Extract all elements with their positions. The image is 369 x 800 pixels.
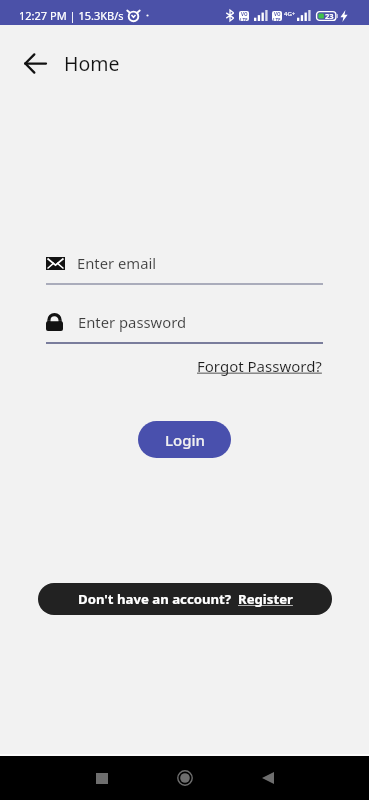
button[interactable]: Back — [246, 756, 290, 800]
button[interactable]: Don't have an account? — [38, 583, 332, 615]
staticText: Enter email — [77, 253, 157, 273]
staticText: VO — [274, 11, 281, 17]
staticText: VO — [241, 11, 248, 17]
button[interactable]: Back — [18, 46, 52, 80]
staticText: Register — [238, 590, 293, 608]
staticText: Enter password — [78, 312, 187, 332]
staticText: 12:27 PM | 15.3KB/s — [19, 8, 124, 23]
staticText: 4G+ — [284, 10, 296, 18]
button[interactable]: Home — [163, 756, 207, 800]
button[interactable]: Recent apps — [80, 756, 124, 800]
staticText: Login — [165, 430, 205, 450]
button[interactable]: Forgot Password? — [197, 356, 322, 376]
staticText: LTE — [240, 17, 248, 21]
button[interactable]: Login — [138, 421, 231, 458]
staticText: Home — [64, 50, 120, 77]
staticText: Forgot Password? — [197, 356, 322, 376]
staticText: 23 — [325, 11, 334, 21]
staticText: LTE — [273, 17, 281, 21]
staticText: Don't have an account? — [78, 590, 232, 608]
